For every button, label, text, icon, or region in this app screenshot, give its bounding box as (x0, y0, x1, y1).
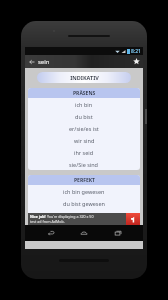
button[interactable]: Recent apps (110, 225, 126, 241)
staticText: PERFEKT (74, 177, 95, 184)
staticText: ich bin gewesen (63, 188, 105, 195)
staticText: test ad from AdMob. (30, 219, 65, 224)
button[interactable]: du bist (28, 110, 140, 122)
button[interactable]: Home (76, 225, 92, 241)
staticText: INDIKATIV (70, 74, 99, 81)
staticText: wir sind (74, 137, 95, 144)
staticText: du bist (75, 113, 93, 120)
button[interactable]: er ist gewesen (28, 209, 140, 221)
button[interactable]: Back (25, 55, 38, 68)
staticText: er/sie/es ist (69, 125, 99, 132)
button[interactable]: er/sie/es ist (28, 122, 140, 134)
staticText: er ist gewesen (65, 212, 103, 219)
staticText: du bist gewesen (63, 200, 105, 207)
staticText: 8:21 (131, 48, 141, 55)
staticText: ich bin (75, 101, 93, 108)
button[interactable]: PERFEKT (28, 175, 140, 185)
staticText: sein (38, 58, 50, 66)
staticText: You're displaying a 320 x 50 (47, 214, 94, 219)
staticText: sie/Sie sind (69, 161, 99, 168)
staticText: PRÄSENS (73, 90, 96, 97)
button[interactable]: sie/Sie sind (28, 158, 140, 170)
button[interactable]: Back (43, 225, 59, 241)
button[interactable]: ich bin (28, 98, 140, 110)
button[interactable]: Favorite (130, 55, 143, 68)
button[interactable]: du bist gewesen (28, 197, 140, 209)
staticText: Nice job! (30, 214, 47, 219)
button[interactable]: PRÄSENS (28, 88, 140, 98)
button[interactable]: ihr seid (28, 146, 140, 158)
staticText: ihr seid (74, 149, 94, 156)
button[interactable]: Advertisement (28, 213, 140, 225)
button[interactable]: wir sind (28, 134, 140, 146)
button[interactable]: ich bin gewesen (28, 185, 140, 197)
button[interactable]: INDIKATIV (37, 72, 131, 83)
